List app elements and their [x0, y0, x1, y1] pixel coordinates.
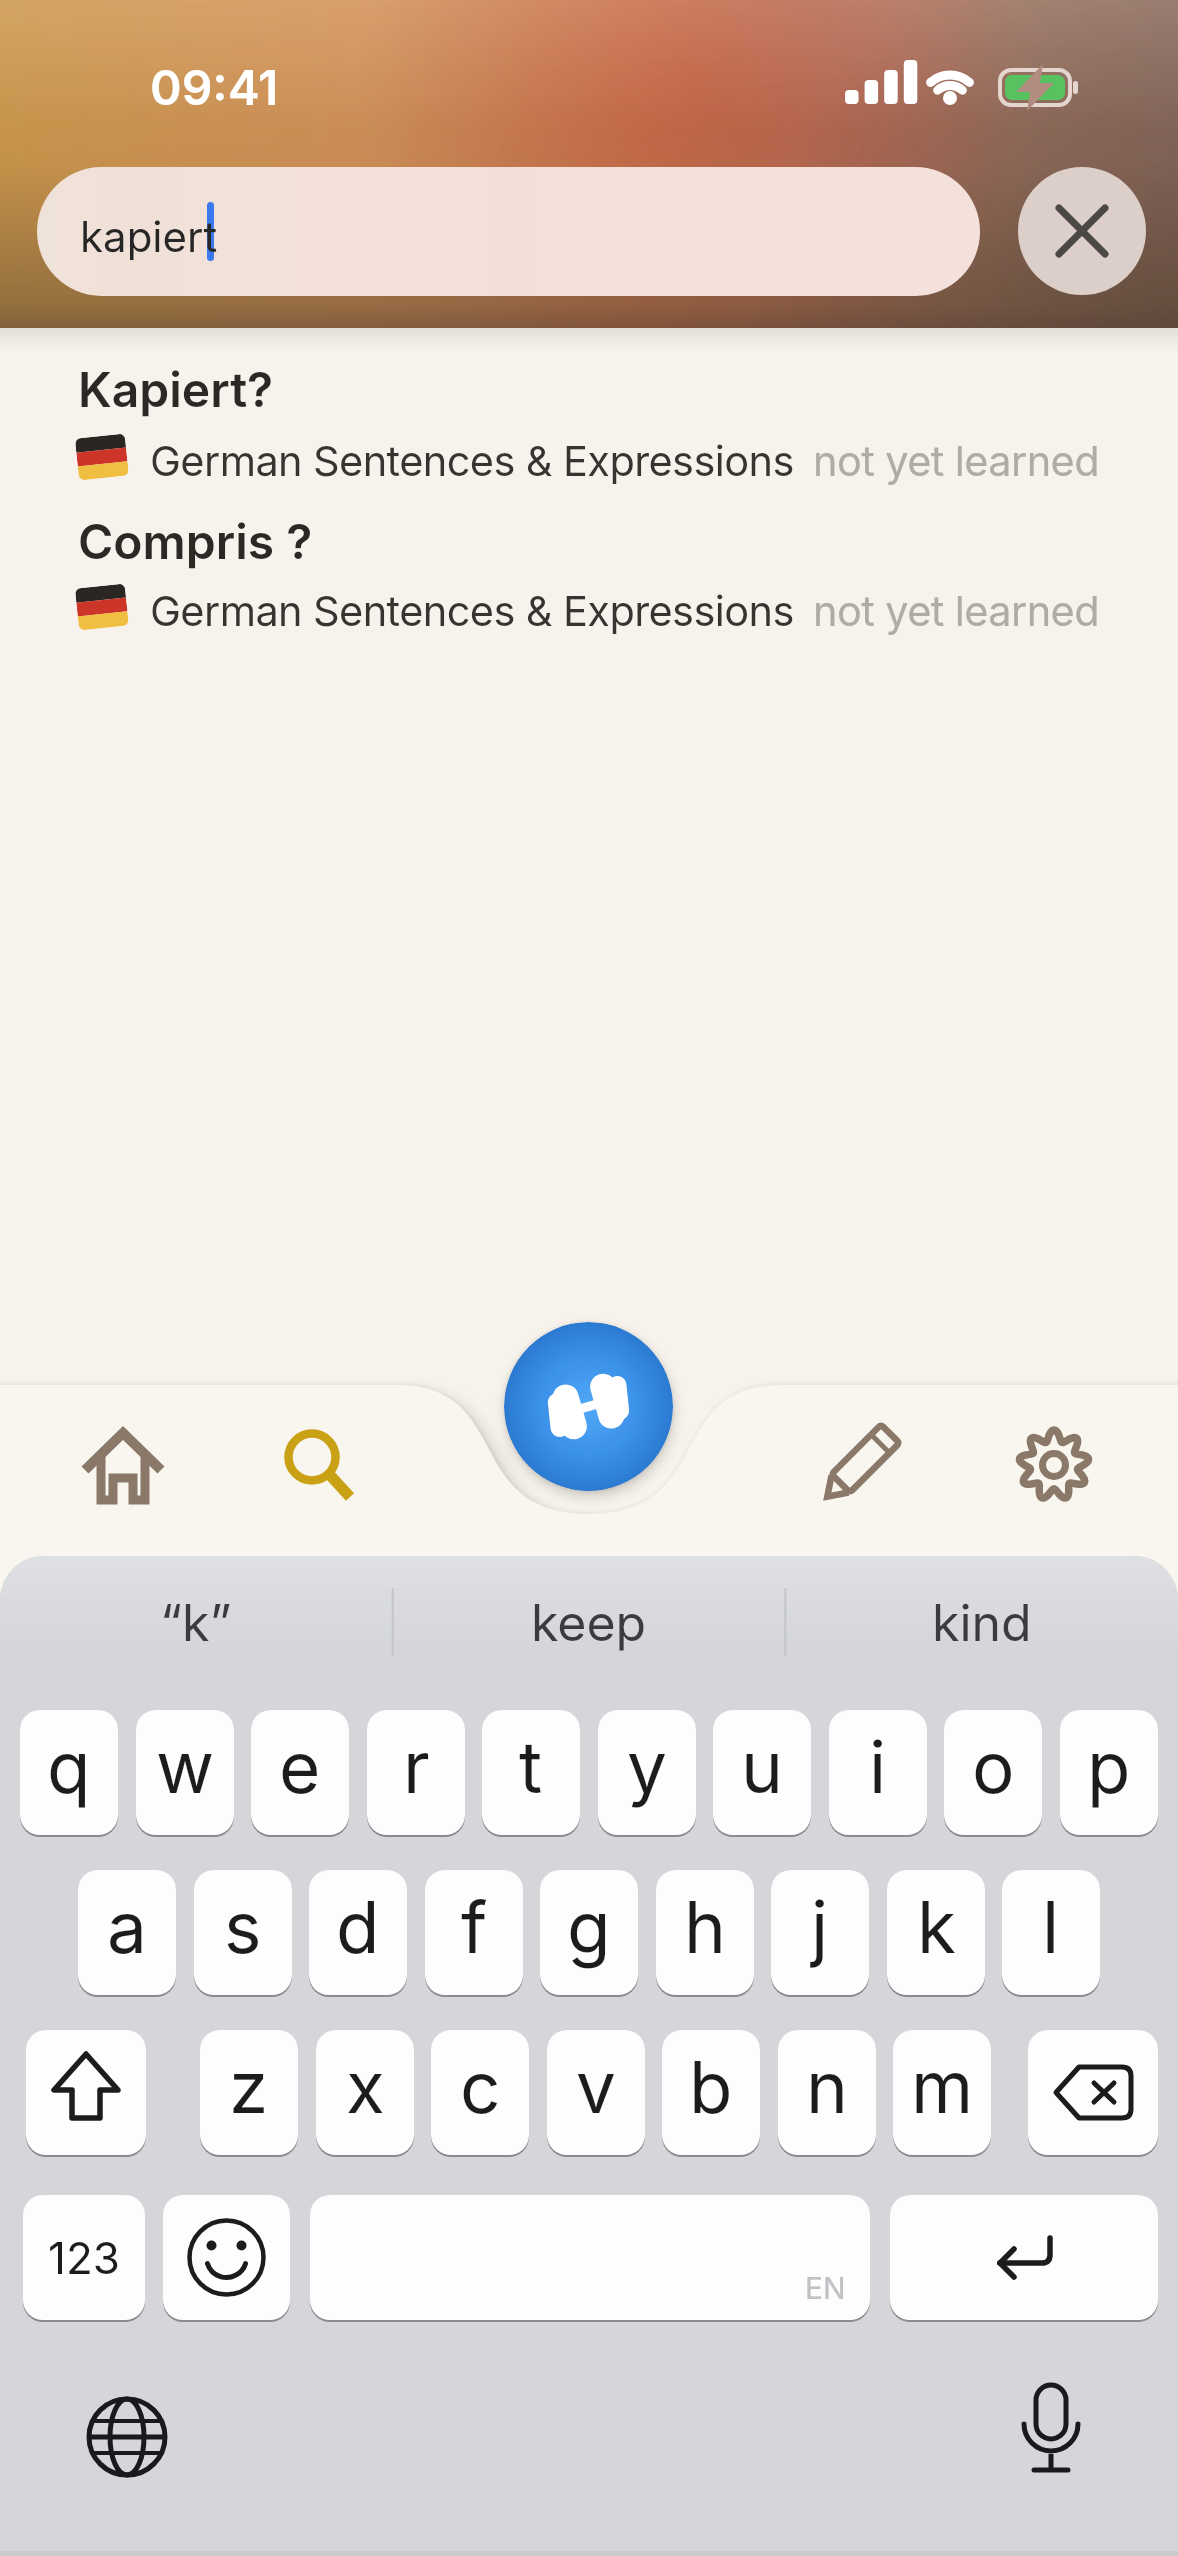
staticText: Compris ?: [78, 512, 313, 570]
staticText: kapiert: [80, 211, 218, 262]
staticText: German Sentences & Expressions: [150, 586, 794, 636]
staticText: v: [576, 2044, 616, 2130]
staticText: u: [741, 1724, 783, 1810]
staticText: e: [279, 1724, 321, 1810]
staticText: c: [460, 2044, 501, 2130]
staticText: p: [1087, 1724, 1131, 1810]
staticText: not yet learned: [813, 436, 1099, 486]
staticText: y: [627, 1724, 667, 1810]
staticText: k: [917, 1884, 956, 1970]
staticText: kind: [932, 1593, 1032, 1653]
staticText: w: [156, 1724, 215, 1810]
staticText: r: [403, 1724, 430, 1810]
staticText: n: [806, 2044, 848, 2130]
staticText: s: [224, 1884, 262, 1970]
staticText: Kapiert?: [78, 360, 274, 418]
staticText: not yet learned: [813, 586, 1099, 636]
staticText: German Sentences & Expressions: [150, 436, 794, 486]
staticText: j: [811, 1884, 829, 1970]
staticText: a: [107, 1884, 147, 1970]
staticText: “k”: [160, 1593, 232, 1653]
staticText: i: [869, 1724, 887, 1810]
staticText: q: [47, 1724, 91, 1810]
staticText: 123: [48, 2231, 120, 2284]
staticText: l: [1042, 1884, 1060, 1970]
staticText: o: [972, 1724, 1015, 1810]
staticText: x: [346, 2044, 385, 2130]
staticText: g: [567, 1884, 611, 1970]
staticText: h: [684, 1884, 726, 1970]
staticText: m: [911, 2044, 974, 2130]
staticText: EN: [805, 2270, 846, 2306]
staticText: t: [519, 1724, 543, 1810]
staticText: b: [689, 2044, 733, 2130]
staticText: z: [229, 2044, 269, 2130]
staticText: d: [336, 1884, 380, 1970]
staticText: keep: [531, 1593, 647, 1653]
staticText: f: [461, 1884, 488, 1970]
staticText: 09:41: [150, 58, 279, 116]
